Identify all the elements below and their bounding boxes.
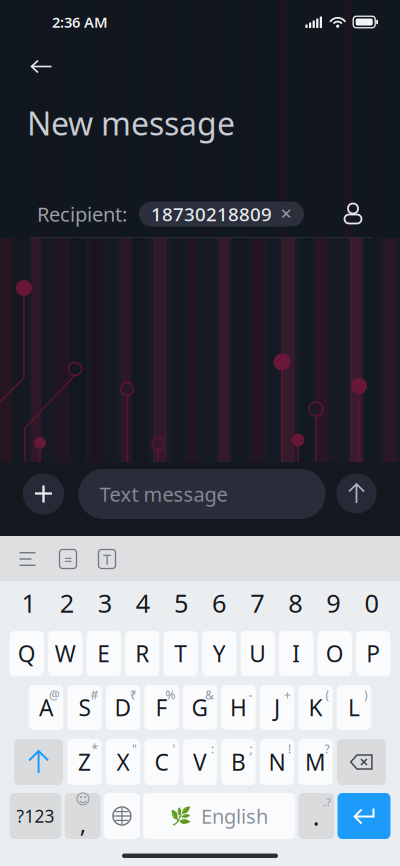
staticText: E: [97, 638, 110, 668]
staticText: ": [132, 741, 137, 757]
button[interactable]: L: [337, 685, 371, 730]
button[interactable]: O: [318, 631, 352, 676]
staticText: G: [191, 692, 208, 722]
button[interactable]: R: [125, 631, 159, 676]
button[interactable]: 6: [200, 581, 238, 625]
button[interactable]: I: [279, 631, 313, 676]
staticText: @: [49, 687, 60, 703]
button[interactable]: U: [241, 631, 275, 676]
button[interactable]: Shift: [14, 739, 63, 785]
button[interactable]: 🌿: [143, 793, 295, 839]
button[interactable]: T: [164, 631, 198, 676]
button[interactable]: G: [183, 685, 217, 730]
staticText: W: [55, 638, 76, 668]
staticText: 8: [288, 586, 302, 620]
button[interactable]: C: [144, 739, 179, 785]
button[interactable]: 9: [314, 581, 352, 625]
staticText: B: [231, 747, 246, 777]
button[interactable]: J: [260, 685, 294, 730]
button[interactable]: Text style: [90, 542, 124, 576]
button[interactable]: Attach: [23, 473, 64, 514]
button[interactable]: 8: [276, 581, 314, 625]
button[interactable]: Comma: [65, 793, 101, 839]
staticText: D: [114, 692, 131, 722]
staticText: New message: [27, 102, 235, 144]
button[interactable]: Clipboard: [10, 542, 44, 576]
staticText: =: [64, 549, 72, 569]
staticText: :: [211, 741, 214, 757]
button[interactable]: Backspace: [337, 739, 386, 785]
staticText: 18730218809: [151, 202, 272, 226]
button[interactable]: Choose contact: [343, 203, 363, 225]
button[interactable]: ?123: [9, 793, 61, 839]
button[interactable]: V: [183, 739, 217, 785]
staticText: P: [366, 638, 380, 668]
button[interactable]: S: [67, 685, 102, 730]
staticText: %: [166, 687, 176, 703]
button[interactable]: Keyboard settings: [51, 542, 85, 576]
staticText: 7: [250, 586, 264, 620]
button[interactable]: E: [87, 631, 121, 676]
staticText: L: [348, 692, 360, 722]
staticText: Recipient:: [37, 201, 127, 227]
staticText: !: [288, 741, 291, 757]
staticText: M: [305, 747, 326, 777]
button[interactable]: 5: [162, 581, 200, 625]
button[interactable]: 7: [238, 581, 276, 625]
staticText: Z: [78, 747, 91, 777]
button[interactable]: Y: [202, 631, 236, 676]
button[interactable]: B: [221, 739, 256, 785]
staticText: R: [135, 638, 149, 668]
button[interactable]: 3: [86, 581, 124, 625]
staticText: ₹: [130, 687, 137, 703]
button[interactable]: Back: [21, 46, 61, 86]
button[interactable]: M: [298, 739, 333, 785]
staticText: -: [249, 687, 253, 703]
button[interactable]: P: [356, 631, 390, 676]
button[interactable]: 1: [9, 581, 48, 625]
staticText: F: [155, 692, 167, 722]
button[interactable]: A: [29, 685, 63, 730]
staticText: C: [154, 747, 168, 777]
staticText: J: [274, 692, 280, 722]
button[interactable]: 2: [48, 581, 86, 625]
button[interactable]: F: [144, 685, 179, 730]
staticText: ): [364, 687, 368, 703]
staticText: 6: [212, 586, 226, 620]
button[interactable]: 4: [124, 581, 162, 625]
staticText: Q: [18, 638, 36, 668]
button[interactable]: W: [48, 631, 82, 676]
staticText: X: [116, 747, 129, 777]
staticText: Y: [213, 638, 226, 668]
staticText: (: [326, 687, 330, 703]
button[interactable]: Text message: [78, 469, 325, 519]
staticText: 0: [364, 586, 378, 620]
staticText: I: [292, 638, 300, 668]
staticText: ☺: [75, 791, 90, 807]
button[interactable]: H: [221, 685, 256, 730]
staticText: 1: [21, 586, 35, 620]
staticText: *: [92, 741, 99, 757]
staticText: T: [103, 549, 111, 569]
button[interactable]: D: [106, 685, 140, 730]
button[interactable]: Return: [337, 793, 390, 839]
button[interactable]: K: [298, 685, 333, 730]
staticText: V: [193, 747, 207, 777]
staticText: A: [39, 692, 53, 722]
button[interactable]: Q: [10, 631, 44, 676]
staticText: T: [174, 638, 187, 668]
button[interactable]: N: [260, 739, 294, 785]
button[interactable]: Switch language: [104, 793, 140, 839]
staticText: N: [268, 747, 285, 777]
staticText: U: [249, 638, 266, 668]
button[interactable]: 0: [352, 581, 390, 625]
staticText: Text message: [99, 481, 227, 507]
staticText: 🌿: [170, 806, 192, 826]
button[interactable]: Send: [336, 473, 376, 513]
button[interactable]: Period: [298, 793, 334, 839]
staticText: #: [91, 687, 99, 703]
staticText: ': [173, 741, 176, 757]
button[interactable]: X: [106, 739, 140, 785]
button[interactable]: Z: [67, 739, 102, 785]
staticText: O: [326, 638, 344, 668]
